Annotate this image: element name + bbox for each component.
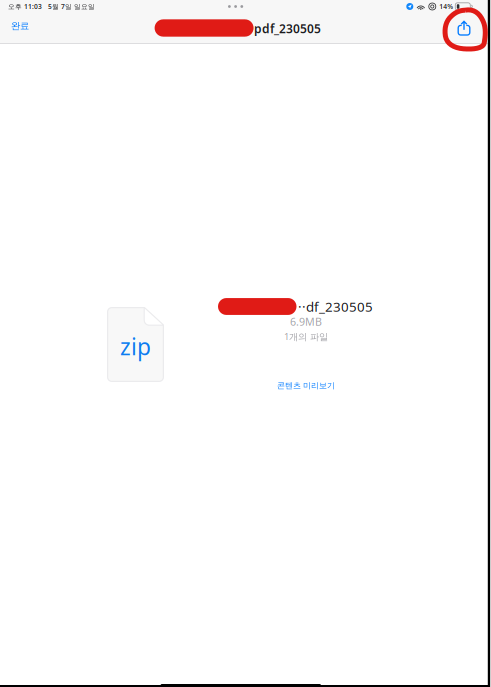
- staticText: 6.9MB: [290, 314, 322, 329]
- button[interactable]: 완료: [0, 13, 40, 43]
- staticText: 1개의 파일: [284, 330, 328, 343]
- button[interactable]: Share: [448, 13, 480, 43]
- staticText: zip: [120, 331, 151, 361]
- button[interactable]: 콘텐츠 미리보기: [277, 380, 335, 391]
- staticText: 콘텐츠 미리보기: [277, 381, 335, 390]
- staticText: 14%: [439, 2, 453, 11]
- staticText: 5월 7일 일요일: [48, 2, 95, 11]
- staticText: 완료: [11, 20, 29, 32]
- staticText: ··df_230505: [298, 298, 373, 315]
- staticText: 오후 11:03: [8, 2, 42, 11]
- staticText: pdf_230505: [254, 20, 321, 36]
